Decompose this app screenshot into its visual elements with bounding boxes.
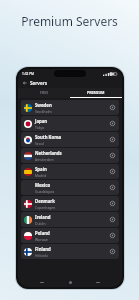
button[interactable]: Info Poland xyxy=(109,232,116,239)
staticText: Amsterdam xyxy=(35,157,54,162)
staticText: Dublin xyxy=(35,221,46,226)
button[interactable]: Info South Korea xyxy=(109,136,116,143)
button[interactable]: Nav 1 xyxy=(66,278,75,287)
staticText: Japan xyxy=(35,118,48,124)
button[interactable]: Poland xyxy=(21,228,119,243)
button[interactable]: Japan xyxy=(21,116,119,131)
staticText: Denmark xyxy=(35,198,55,204)
staticText: Guadalajara xyxy=(35,189,55,194)
button[interactable]: PREMIUM xyxy=(70,88,122,97)
button[interactable]: Nav 0 xyxy=(37,279,47,286)
button[interactable]: Mexico xyxy=(21,180,119,195)
button[interactable]: Sweden xyxy=(21,100,119,115)
staticText: Seoul xyxy=(35,141,44,146)
staticText: Finland xyxy=(35,246,51,252)
staticText: Stockholm xyxy=(35,109,52,114)
button[interactable]: Back xyxy=(22,80,28,86)
button[interactable]: Denmark xyxy=(21,196,119,211)
button[interactable]: FREE xyxy=(18,88,70,97)
staticText: Copenhagen xyxy=(35,205,56,210)
staticText: Madrid xyxy=(35,173,47,178)
staticText: Warsaw xyxy=(35,237,48,242)
button[interactable]: Info Sweden xyxy=(109,104,116,111)
button[interactable]: Info Denmark xyxy=(109,200,116,207)
staticText: Spain xyxy=(35,166,47,172)
button[interactable]: Nav 2 xyxy=(93,279,103,286)
staticText: Ireland xyxy=(35,214,51,220)
button[interactable]: Info Japan xyxy=(109,120,116,127)
staticText: 1:32 PM xyxy=(22,72,35,76)
button[interactable]: Finland xyxy=(21,244,119,259)
staticText: FREE xyxy=(40,90,49,95)
staticText: Tokyo xyxy=(35,125,45,130)
button[interactable]: Info Netherlands xyxy=(109,152,116,159)
button[interactable]: Info Spain xyxy=(109,168,116,175)
staticText: Servers xyxy=(30,80,48,86)
button[interactable]: Info Finland xyxy=(109,248,116,255)
button[interactable]: Info Ireland xyxy=(109,216,116,223)
staticText: Sweden xyxy=(35,102,52,108)
button[interactable]: South Korea xyxy=(21,132,119,147)
button[interactable]: Netherlands xyxy=(21,148,119,163)
staticText: PREMIUM xyxy=(87,90,105,95)
button[interactable]: Spain xyxy=(21,164,119,179)
button[interactable]: Info Mexico xyxy=(109,184,116,191)
staticText: Helsinki xyxy=(35,253,48,258)
staticText: Mexico xyxy=(35,182,51,188)
staticText: Premium Servers xyxy=(21,13,118,29)
button[interactable]: Ireland xyxy=(21,212,119,227)
staticText: Poland xyxy=(35,230,50,236)
staticText: Netherlands xyxy=(35,150,62,156)
staticText: South Korea xyxy=(35,134,62,140)
